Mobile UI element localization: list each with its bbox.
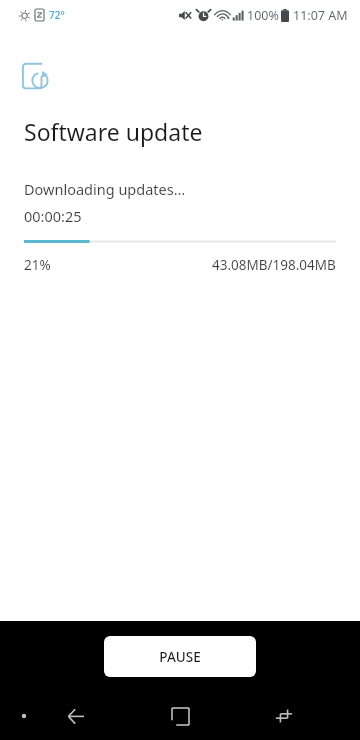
button[interactable]: PAUSE — [104, 636, 256, 677]
button[interactable]: Recent apps — [256, 692, 312, 740]
staticText: 100% — [247, 7, 279, 24]
button[interactable]: Back — [48, 692, 104, 740]
staticText: 00:00:25 — [24, 206, 82, 226]
staticText: 72° — [49, 8, 65, 22]
staticText: 21% — [24, 256, 51, 274]
staticText: Downloading updates… — [24, 179, 186, 199]
staticText: 11:07 AM — [293, 7, 348, 24]
staticText: 43.08MB/198.04MB — [212, 256, 336, 274]
staticText: PAUSE — [159, 648, 201, 666]
staticText: Software update — [24, 116, 203, 147]
button[interactable]: Home — [152, 692, 208, 740]
button[interactable]: Hide navigation bar — [12, 704, 36, 728]
